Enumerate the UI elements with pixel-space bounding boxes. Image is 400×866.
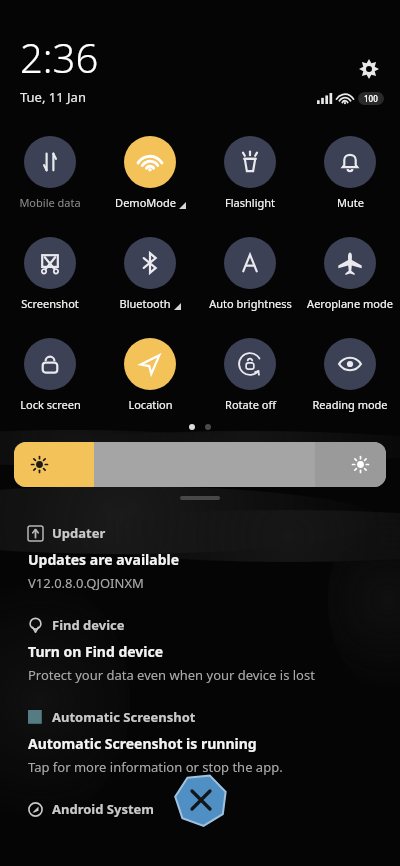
staticText: Screenshot (21, 296, 79, 311)
staticText: Lock screen (20, 397, 81, 412)
button[interactable]: Auto brightness (200, 235, 300, 313)
staticText: V12.0.8.0.QJOINXM (28, 574, 144, 592)
button[interactable]: Settings (352, 52, 386, 86)
button[interactable]: Location (100, 336, 200, 414)
staticText: Rotate off (225, 397, 276, 412)
staticText: DemoMode (115, 195, 176, 210)
staticText: Automatic Screenshot is running (28, 734, 257, 753)
button[interactable]: Mobile data (0, 134, 100, 212)
staticText: Mute (337, 195, 364, 210)
staticText: Reading mode (312, 397, 388, 412)
staticText: 2:36 (20, 30, 99, 84)
staticText: Location (128, 397, 173, 412)
staticText: Find device (52, 616, 125, 634)
staticText: Turn on Find device (28, 642, 164, 661)
staticText: Mobile data (19, 195, 81, 210)
button[interactable]: Bluetooth (100, 235, 200, 313)
button[interactable]: Flashlight (200, 134, 300, 212)
staticText: Android System (52, 800, 155, 818)
staticText: Aeroplane mode (307, 296, 393, 311)
button[interactable]: Updater (28, 524, 372, 592)
button[interactable]: Rotate off (200, 336, 300, 414)
staticText: 100 (364, 93, 378, 104)
staticText: Tue, 11 Jan (20, 88, 86, 106)
button[interactable]: Find device (28, 616, 372, 684)
button[interactable]: Brightness (14, 442, 386, 487)
staticText: Updater (52, 524, 106, 542)
button[interactable]: Lock screen (0, 336, 100, 414)
staticText: Tap for more information or stop the app… (28, 758, 283, 776)
button[interactable]: Screenshot (0, 235, 100, 313)
staticText: Auto brightness (209, 296, 292, 311)
button[interactable]: DemoMode (100, 134, 200, 212)
button[interactable]: Reading mode (300, 336, 400, 414)
staticText: Updates are available (28, 550, 180, 569)
staticText: Automatic Screenshot (52, 708, 196, 726)
staticText: Protect your data even when your device … (28, 666, 315, 684)
button[interactable]: Close (173, 772, 229, 828)
staticText: Flashlight (225, 195, 275, 210)
button[interactable]: Automatic Screenshot (28, 708, 372, 776)
button[interactable]: Aeroplane mode (300, 235, 400, 313)
staticText: Bluetooth (119, 296, 171, 311)
button[interactable]: Mute (300, 134, 400, 212)
